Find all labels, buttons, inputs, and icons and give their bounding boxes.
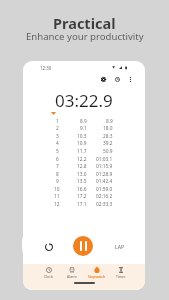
button[interactable]: More options bbox=[124, 73, 136, 85]
button[interactable]: History bbox=[111, 73, 123, 85]
staticText: 12.8 bbox=[77, 163, 87, 170]
staticText: 13.0 bbox=[77, 171, 87, 178]
staticText: 3 bbox=[56, 133, 59, 140]
staticText: Timer bbox=[116, 274, 126, 279]
staticText: Enhance your productivity bbox=[26, 30, 144, 43]
staticText: 8 bbox=[56, 171, 59, 178]
staticText: Practical bbox=[53, 13, 116, 33]
button[interactable]: Settings bbox=[97, 73, 109, 85]
staticText: 4 bbox=[56, 140, 59, 147]
staticText: 2 bbox=[56, 125, 59, 132]
button[interactable]: LAP bbox=[110, 238, 130, 254]
staticText: Clock bbox=[44, 274, 53, 279]
staticText: 28.3 bbox=[103, 133, 113, 140]
staticText: 7 bbox=[56, 163, 59, 170]
staticText: Alarm bbox=[67, 274, 77, 279]
staticText: 01:15.9 bbox=[96, 163, 113, 170]
staticText: 8.9 bbox=[80, 118, 87, 125]
staticText: 9 bbox=[56, 178, 59, 185]
staticText: 12:30 bbox=[40, 65, 52, 71]
staticText: 02:33.3 bbox=[96, 201, 113, 208]
staticText: 16.6 bbox=[77, 186, 87, 193]
staticText: 01:59.0 bbox=[96, 186, 113, 193]
staticText: 12.2 bbox=[77, 156, 87, 163]
staticText: 10.9 bbox=[77, 140, 87, 147]
button[interactable]: Alarm bbox=[60, 267, 84, 283]
staticText: 18.0 bbox=[103, 125, 113, 132]
staticText: 6 bbox=[56, 156, 59, 163]
staticText: LAP bbox=[115, 243, 125, 250]
staticText: 1 bbox=[56, 118, 59, 125]
button[interactable]: Timer bbox=[109, 267, 133, 283]
staticText: 10.3 bbox=[77, 133, 87, 140]
staticText: 8.9 bbox=[106, 118, 113, 125]
staticText: 12 bbox=[54, 201, 60, 208]
staticText: Stopwatch bbox=[88, 274, 106, 279]
staticText: 5 bbox=[56, 148, 59, 155]
staticText: 50.9 bbox=[103, 148, 113, 155]
staticText: 9.1 bbox=[80, 125, 87, 132]
staticText: 03:22.9 bbox=[55, 89, 113, 112]
staticText: 01:42.4 bbox=[96, 178, 113, 185]
staticText: 02:16.2 bbox=[96, 193, 113, 200]
staticText: 11 bbox=[54, 193, 60, 200]
staticText: 17.2 bbox=[77, 193, 87, 200]
button[interactable]: Pause bbox=[73, 236, 93, 256]
staticText: 17.1 bbox=[77, 201, 87, 208]
button[interactable]: Reset bbox=[43, 241, 55, 253]
staticText: 01:03.1 bbox=[96, 156, 113, 163]
staticText: 11.7 bbox=[77, 148, 87, 155]
button[interactable]: Clock bbox=[36, 267, 60, 283]
staticText: 10 bbox=[54, 186, 60, 193]
staticText: 01:28.9 bbox=[96, 171, 113, 178]
staticText: 39.2 bbox=[103, 140, 113, 147]
staticText: 13.5 bbox=[77, 178, 87, 185]
button[interactable]: Stopwatch bbox=[85, 267, 109, 283]
